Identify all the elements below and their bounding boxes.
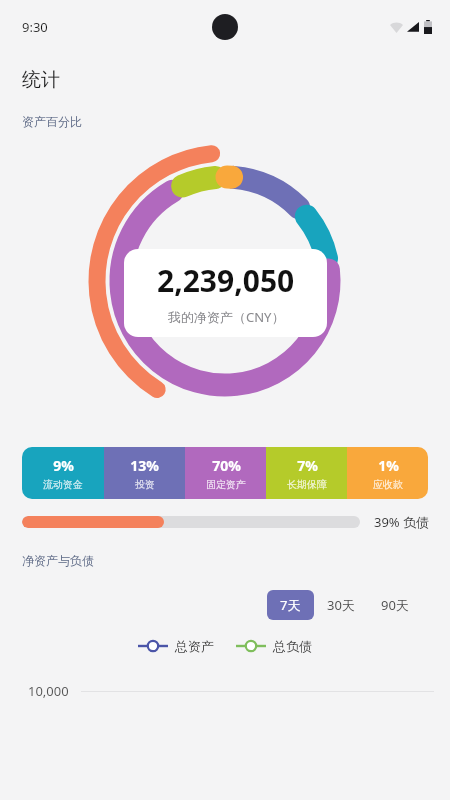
staticText: 统计 xyxy=(22,68,60,92)
staticText: 资产百分比 xyxy=(22,114,82,129)
staticText: 我的净资产（CNY） xyxy=(168,308,285,326)
staticText: 13% xyxy=(130,456,159,475)
staticText: 投资 xyxy=(135,478,155,491)
staticText: 1% xyxy=(378,456,399,475)
staticText: 净资产与负债 xyxy=(22,553,94,568)
button[interactable]: 2,239,050 xyxy=(124,249,327,337)
staticText: 总资产 xyxy=(175,638,214,654)
staticText: 39% 负债 xyxy=(374,513,430,531)
staticText: 长期保障 xyxy=(287,478,327,491)
button[interactable]: 30天 xyxy=(314,590,368,620)
button[interactable]: 9% xyxy=(22,447,104,499)
button[interactable]: 总负债 xyxy=(236,638,312,654)
button[interactable]: 70% xyxy=(185,447,266,499)
staticText: 7% xyxy=(297,456,318,475)
button[interactable]: 7天 xyxy=(267,590,314,620)
button[interactable]: 总资产 xyxy=(138,638,214,654)
button[interactable]: 7% xyxy=(266,447,347,499)
staticText: 9% xyxy=(53,456,74,475)
staticText: 30天 xyxy=(327,596,355,614)
staticText: 90天 xyxy=(381,596,409,614)
button[interactable]: 1% xyxy=(347,447,428,499)
staticText: 9:30 xyxy=(22,18,48,36)
staticText: 7天 xyxy=(280,596,301,614)
staticText: 2,239,050 xyxy=(157,260,295,301)
staticText: 70% xyxy=(212,456,241,475)
button[interactable]: 13% xyxy=(104,447,185,499)
staticText: 应收款 xyxy=(373,478,403,491)
staticText: 流动资金 xyxy=(43,478,83,491)
button[interactable]: 90天 xyxy=(368,590,422,620)
staticText: 总负债 xyxy=(273,638,312,654)
staticText: 固定资产 xyxy=(206,478,246,491)
staticText: 10,000 xyxy=(28,682,69,700)
